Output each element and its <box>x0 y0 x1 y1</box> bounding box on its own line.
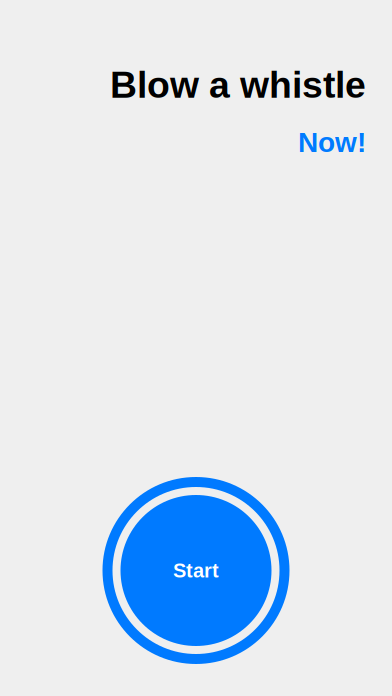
staticText: Blow a whistle <box>110 64 366 106</box>
staticText: Now! <box>298 127 366 158</box>
button[interactable]: Start <box>102 477 289 664</box>
staticText: Start <box>173 559 219 582</box>
